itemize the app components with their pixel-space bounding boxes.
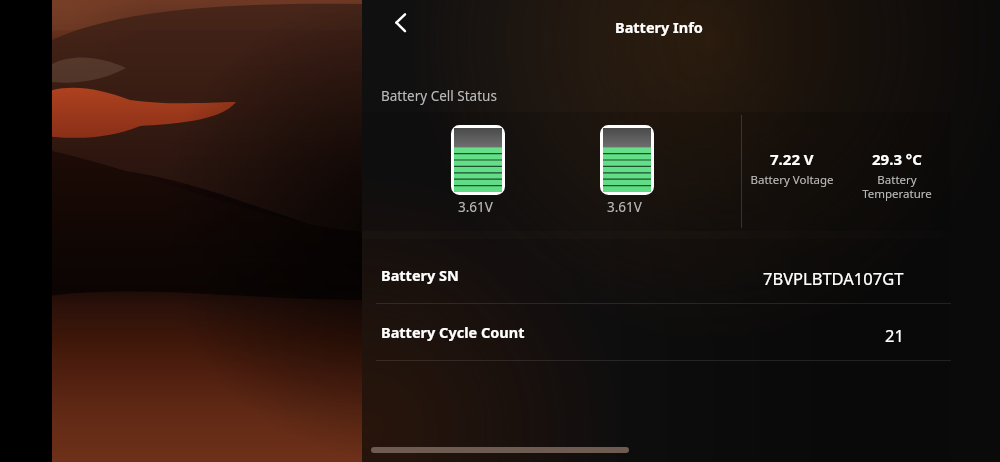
- button[interactable]: Battery SN: [362, 247, 951, 303]
- staticText: 7.22 V: [770, 149, 814, 169]
- staticText: Battery Info: [615, 17, 703, 37]
- staticText: 3.61V: [458, 198, 493, 216]
- staticText: 29.3 °C: [872, 149, 922, 169]
- button[interactable]: Battery Cycle Count: [362, 304, 951, 360]
- staticText: Battery SN: [381, 265, 459, 285]
- staticText: 7BVPLBTDA107GT: [763, 267, 904, 289]
- staticText: Battery Voltage: [750, 172, 834, 188]
- staticText: 21: [885, 324, 904, 346]
- staticText: 3.61V: [607, 198, 642, 216]
- staticText: Battery Cell Status: [381, 87, 497, 105]
- button[interactable]: Back: [378, 0, 422, 44]
- staticText: Battery Temperature: [862, 172, 932, 201]
- staticText: Battery Cycle Count: [381, 322, 525, 342]
